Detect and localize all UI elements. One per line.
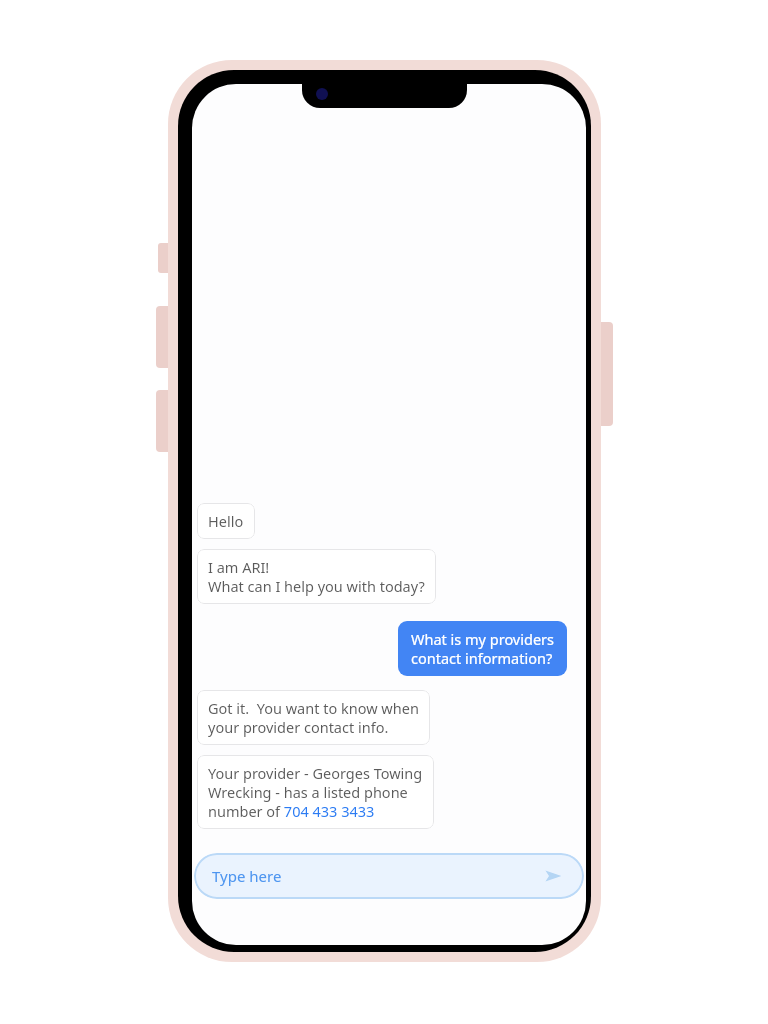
button[interactable]: Send — [540, 863, 566, 889]
staticText: What is my providers contact information… — [411, 629, 554, 668]
staticText: Got it. You want to know when your provi… — [208, 698, 419, 737]
button[interactable]: Hello — [197, 503, 255, 539]
button[interactable]: What is my providers contact information… — [398, 621, 567, 676]
button[interactable]: Got it. You want to know when your provi… — [197, 690, 430, 745]
staticText: Hello — [208, 511, 244, 531]
button[interactable]: Your provider - Georges Towing Wrecking … — [197, 755, 434, 829]
button[interactable]: I am ARI! What can I help you with today… — [197, 549, 436, 604]
staticText: I am ARI! What can I help you with today… — [208, 557, 425, 596]
staticText: Type here — [212, 866, 282, 886]
button[interactable]: Type here — [194, 853, 584, 899]
staticText: Your provider - Georges Towing Wrecking … — [208, 763, 423, 821]
